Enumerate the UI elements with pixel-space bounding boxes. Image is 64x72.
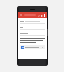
button[interactable]: Send xyxy=(40,14,43,17)
button[interactable] xyxy=(20,20,45,23)
button[interactable] xyxy=(20,26,45,29)
button[interactable]: More options xyxy=(43,14,46,17)
button[interactable]: Remove attachment xyxy=(20,45,45,49)
button[interactable]: Sending progress xyxy=(24,14,36,16)
button[interactable] xyxy=(20,32,45,35)
button[interactable]: Attach file xyxy=(37,14,40,17)
button[interactable]: Close xyxy=(19,13,23,17)
button[interactable]: Remove attachment xyxy=(41,46,44,49)
